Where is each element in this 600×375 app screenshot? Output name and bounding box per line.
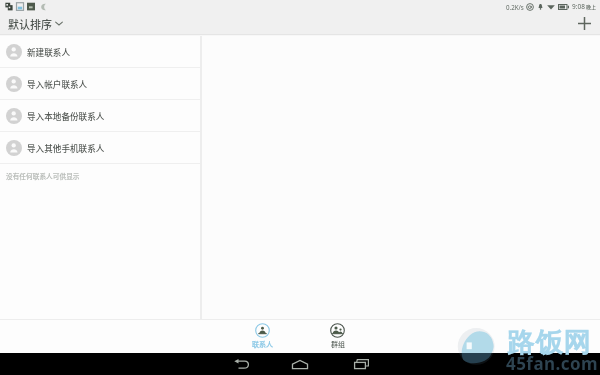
staticText: 群组: [331, 339, 345, 349]
button[interactable]: Recents: [346, 354, 376, 374]
staticText: 联系人: [252, 339, 273, 349]
button[interactable]: 导入其他手机联系人: [0, 132, 200, 163]
staticText: 导入本地备份联系人: [27, 110, 105, 122]
staticText: 路饭网: [507, 326, 592, 360]
staticText: 0.2K/s: [506, 3, 524, 11]
staticText: 新建联系人: [27, 46, 70, 58]
staticText: 9:08: [572, 2, 585, 11]
staticText: 没有任何联系人可供显示: [6, 171, 80, 181]
button[interactable]: 新建联系人: [0, 36, 200, 67]
button[interactable]: 导入帐户联系人: [0, 68, 200, 99]
staticText: 45fan.com: [506, 352, 599, 375]
button[interactable]: Home: [285, 354, 315, 374]
staticText: 导入其他手机联系人: [27, 142, 105, 154]
staticText: 晚上: [586, 3, 597, 10]
staticText: 默认排序: [8, 16, 52, 32]
button[interactable]: Add contact: [574, 13, 595, 34]
button[interactable]: 群组: [313, 323, 362, 349]
button[interactable]: 联系人: [238, 323, 287, 349]
button[interactable]: 导入本地备份联系人: [0, 100, 200, 131]
button[interactable]: 默认排序: [0, 13, 71, 34]
staticText: 导入帐户联系人: [27, 78, 88, 90]
button[interactable]: Back: [226, 354, 256, 374]
